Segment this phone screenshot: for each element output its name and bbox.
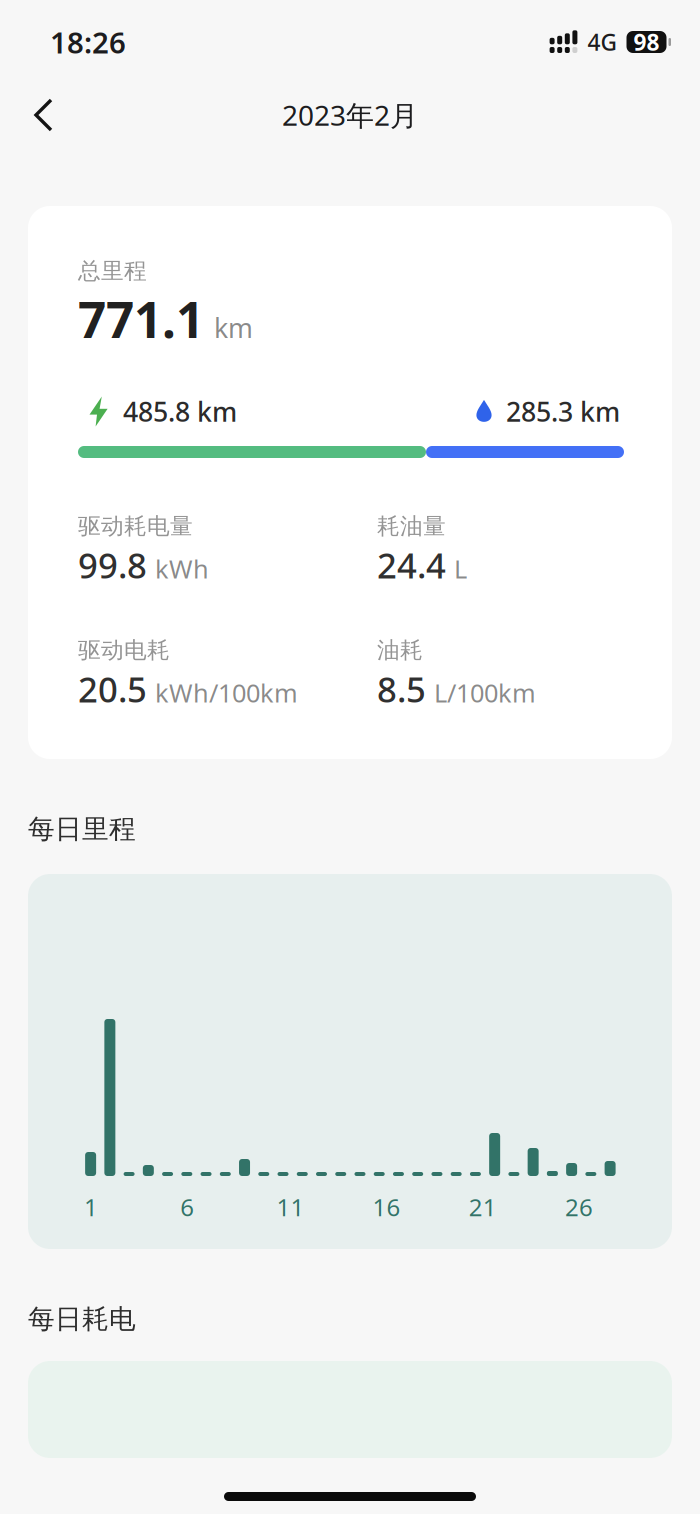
staticText: 20.5	[78, 666, 147, 712]
staticText: 每日里程	[28, 813, 136, 845]
button[interactable]: Back	[2, 84, 78, 146]
staticText: 11	[276, 1191, 304, 1223]
staticText: 耗油量	[377, 512, 446, 540]
staticText: 485.8 km	[123, 394, 237, 429]
staticText: 26	[565, 1191, 593, 1223]
staticText: 驱动耗电量	[78, 512, 193, 540]
staticText: 1	[84, 1191, 98, 1223]
staticText: 16	[373, 1191, 401, 1223]
staticText: 8.5	[377, 666, 426, 712]
staticText: L	[454, 552, 467, 585]
staticText: kWh/100km	[155, 676, 298, 709]
staticText: 18:26	[50, 22, 126, 61]
staticText: 771.1	[78, 286, 204, 351]
staticText: 6	[180, 1191, 194, 1223]
staticText: 98	[633, 27, 659, 57]
staticText: 24.4	[377, 542, 446, 588]
staticText: 总里程	[78, 257, 147, 285]
staticText: 每日耗电	[28, 1303, 136, 1335]
staticText: km	[214, 310, 253, 345]
staticText: 285.3 km	[506, 394, 620, 429]
staticText: kWh	[155, 552, 209, 585]
staticText: 4G	[587, 27, 616, 57]
staticText: 驱动电耗	[78, 636, 170, 664]
staticText: 21	[469, 1191, 497, 1223]
staticText: 99.8	[78, 542, 147, 588]
staticText: 油耗	[377, 636, 423, 664]
staticText: 2023年2月	[282, 96, 418, 134]
staticText: L/100km	[434, 676, 536, 709]
